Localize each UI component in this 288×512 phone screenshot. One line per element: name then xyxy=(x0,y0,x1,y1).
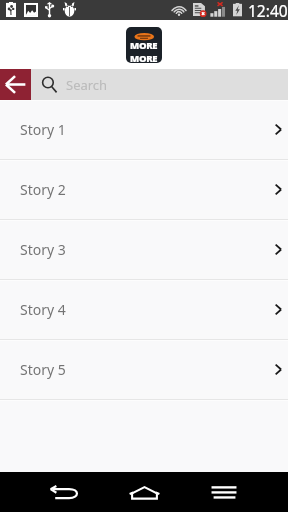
staticText: Story 2 xyxy=(20,180,66,199)
staticText: Search xyxy=(66,76,108,94)
button[interactable]: Search xyxy=(31,69,288,100)
button[interactable]: Story 5 xyxy=(0,340,288,399)
staticText: Story 4 xyxy=(20,300,66,319)
button[interactable]: Story 3 xyxy=(0,220,288,279)
button[interactable]: Home xyxy=(120,472,168,512)
staticText: Story 3 xyxy=(20,240,66,259)
button[interactable]: Recent apps xyxy=(200,472,248,512)
staticText: MORE xyxy=(130,39,158,52)
button[interactable]: Back xyxy=(40,472,88,512)
button[interactable]: Story 1 xyxy=(0,100,288,159)
staticText: MORE xyxy=(130,52,158,63)
staticText: Story 1 xyxy=(20,120,66,139)
staticText: Story 5 xyxy=(20,360,66,379)
button[interactable]: Story 2 xyxy=(0,160,288,219)
staticText: 12:40 xyxy=(248,0,288,20)
button[interactable]: Back xyxy=(0,69,31,100)
button[interactable]: More and More logo xyxy=(126,27,162,63)
button[interactable]: Story 4 xyxy=(0,280,288,339)
